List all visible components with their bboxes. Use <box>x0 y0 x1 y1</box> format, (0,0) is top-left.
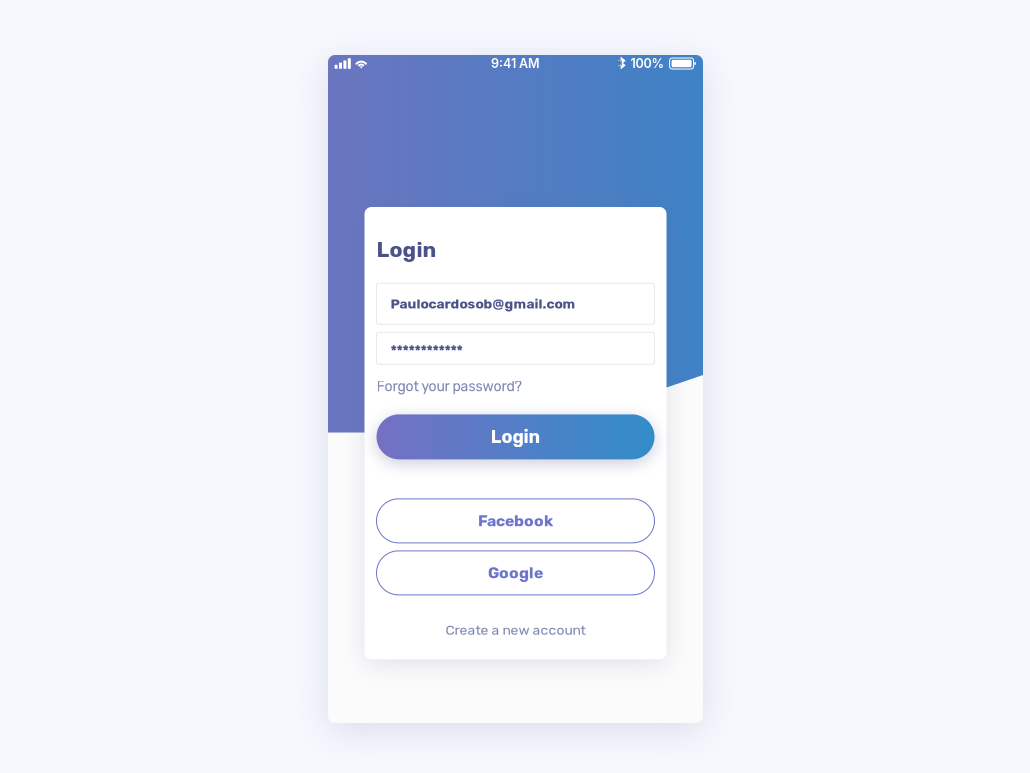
staticText: Paulocardosob@gmail.com <box>390 296 575 312</box>
staticText: ************ <box>390 343 462 360</box>
staticText: Forgot your password? <box>376 378 521 395</box>
staticText: Login <box>376 237 436 262</box>
staticText: Google <box>488 563 543 582</box>
button[interactable]: Login <box>364 414 666 459</box>
button[interactable]: Facebook <box>364 499 666 543</box>
button[interactable]: Google <box>364 551 666 595</box>
staticText: 9:41 AM <box>491 56 540 71</box>
staticText: Create a new account <box>445 622 585 638</box>
button[interactable]: Create a new account <box>364 620 666 640</box>
staticText: Login <box>490 426 540 447</box>
button[interactable]: Forgot your password? <box>364 376 521 397</box>
staticText: Facebook <box>478 511 553 530</box>
staticText: 100% <box>631 56 665 71</box>
